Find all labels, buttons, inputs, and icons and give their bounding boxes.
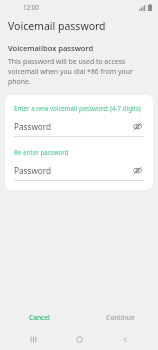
staticText: Voicemailbox password	[8, 43, 94, 53]
staticText: Password	[14, 121, 130, 132]
staticText: Enter a new voicemail password: (4-7 dig…	[14, 104, 141, 112]
button[interactable]: Show password	[130, 119, 144, 133]
staticText: Voicemail password	[8, 19, 106, 33]
staticText: Cancel	[29, 313, 50, 322]
button[interactable]: Show password	[130, 163, 144, 177]
staticText: Continue	[106, 313, 135, 322]
staticText: 12:00	[23, 3, 39, 11]
button[interactable]: Home	[66, 328, 92, 350]
staticText: Re-enter password	[14, 148, 69, 156]
button[interactable]: Back	[112, 328, 138, 350]
button[interactable]: Continue	[103, 310, 138, 325]
staticText: This password will be used to access voi…	[8, 57, 148, 86]
button[interactable]: Cancel	[26, 310, 53, 325]
staticText: Password	[14, 165, 130, 176]
button[interactable]: Recent apps	[20, 328, 46, 350]
